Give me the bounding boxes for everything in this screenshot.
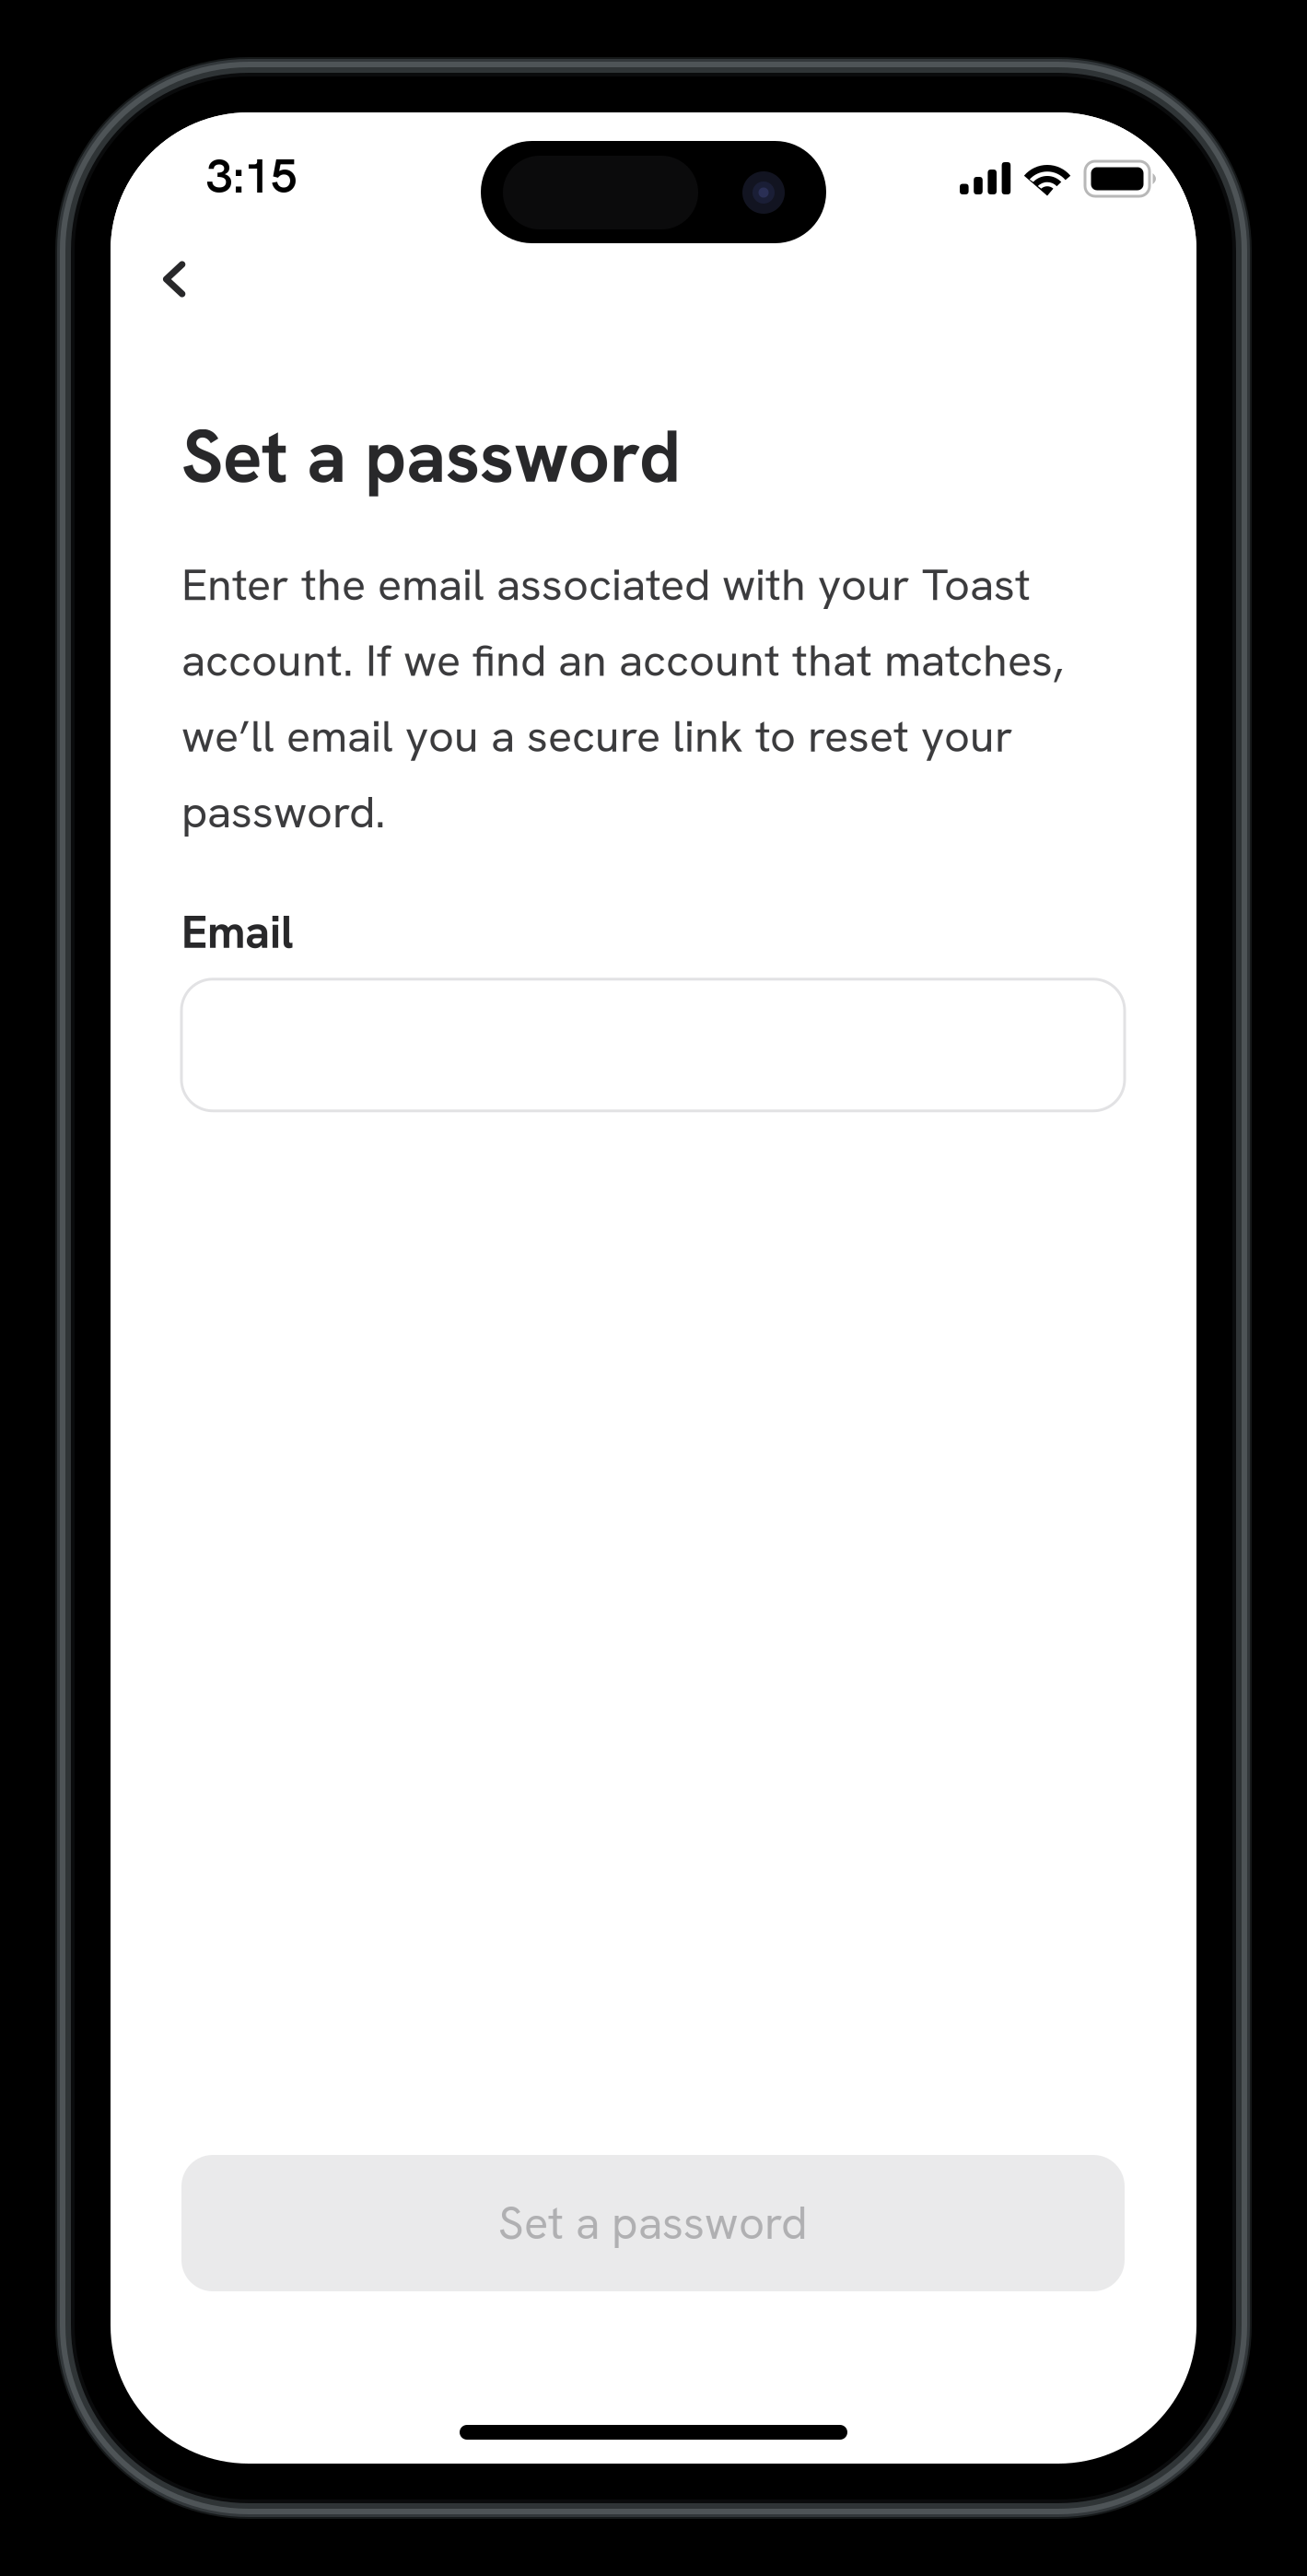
staticText: Set a password (498, 2194, 808, 2252)
staticText: Email (181, 903, 294, 962)
staticText: Set a password (181, 409, 681, 504)
button[interactable]: Back (113, 221, 235, 337)
staticText: 3:15 (206, 146, 298, 207)
staticText: Enter the email associated with your Toa… (181, 555, 1064, 841)
button[interactable]: Set a password (181, 2155, 1125, 2291)
